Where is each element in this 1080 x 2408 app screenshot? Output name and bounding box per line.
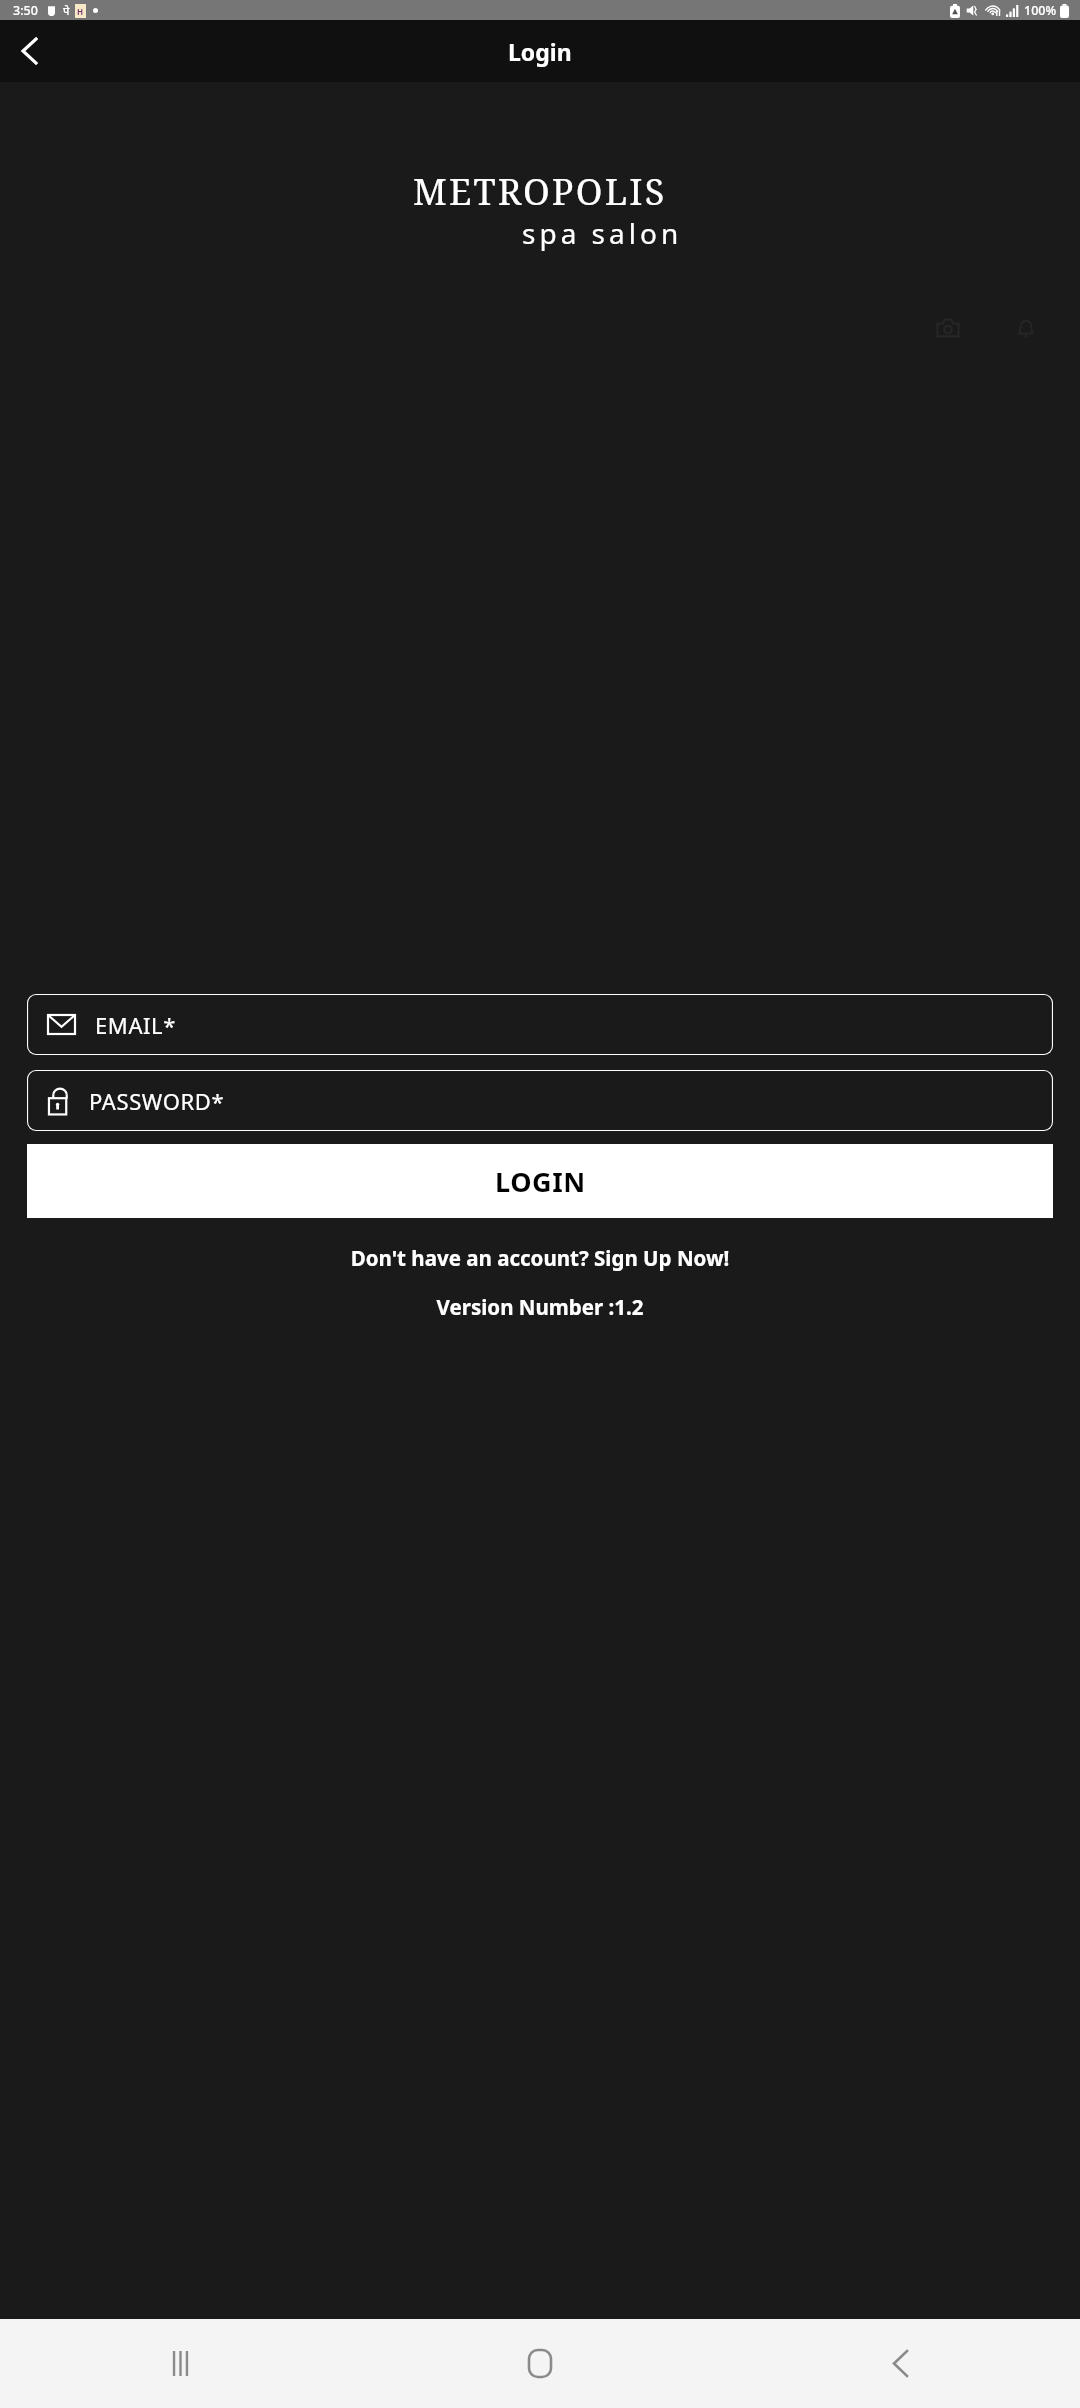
staticText: spa salon [522, 214, 683, 252]
staticText: EMAIL* [95, 1010, 176, 1040]
staticText: Login [508, 36, 572, 67]
staticText: METROPOLIS [413, 167, 667, 216]
staticText: 100% [1024, 2, 1057, 19]
staticText: 3:50 [13, 2, 38, 19]
button[interactable]: EMAIL* [27, 994, 1053, 1055]
staticText: LOGIN [495, 1163, 586, 1200]
button[interactable]: Back [720, 2319, 1080, 2408]
button[interactable]: PASSWORD* [27, 1070, 1053, 1131]
staticText: H [77, 6, 84, 17]
button[interactable]: LOGIN [27, 1144, 1053, 1218]
button[interactable]: Recent apps [0, 2319, 360, 2408]
button[interactable]: Back [6, 28, 52, 74]
button[interactable]: Home [360, 2319, 720, 2408]
staticText: PASSWORD* [89, 1086, 225, 1116]
button[interactable]: Don't have an account? Sign Up Now! [0, 1238, 1080, 1278]
button[interactable]: Camera [926, 306, 970, 350]
staticText: पे [63, 3, 70, 18]
staticText: Version Number :1.2 [0, 1293, 1080, 1321]
